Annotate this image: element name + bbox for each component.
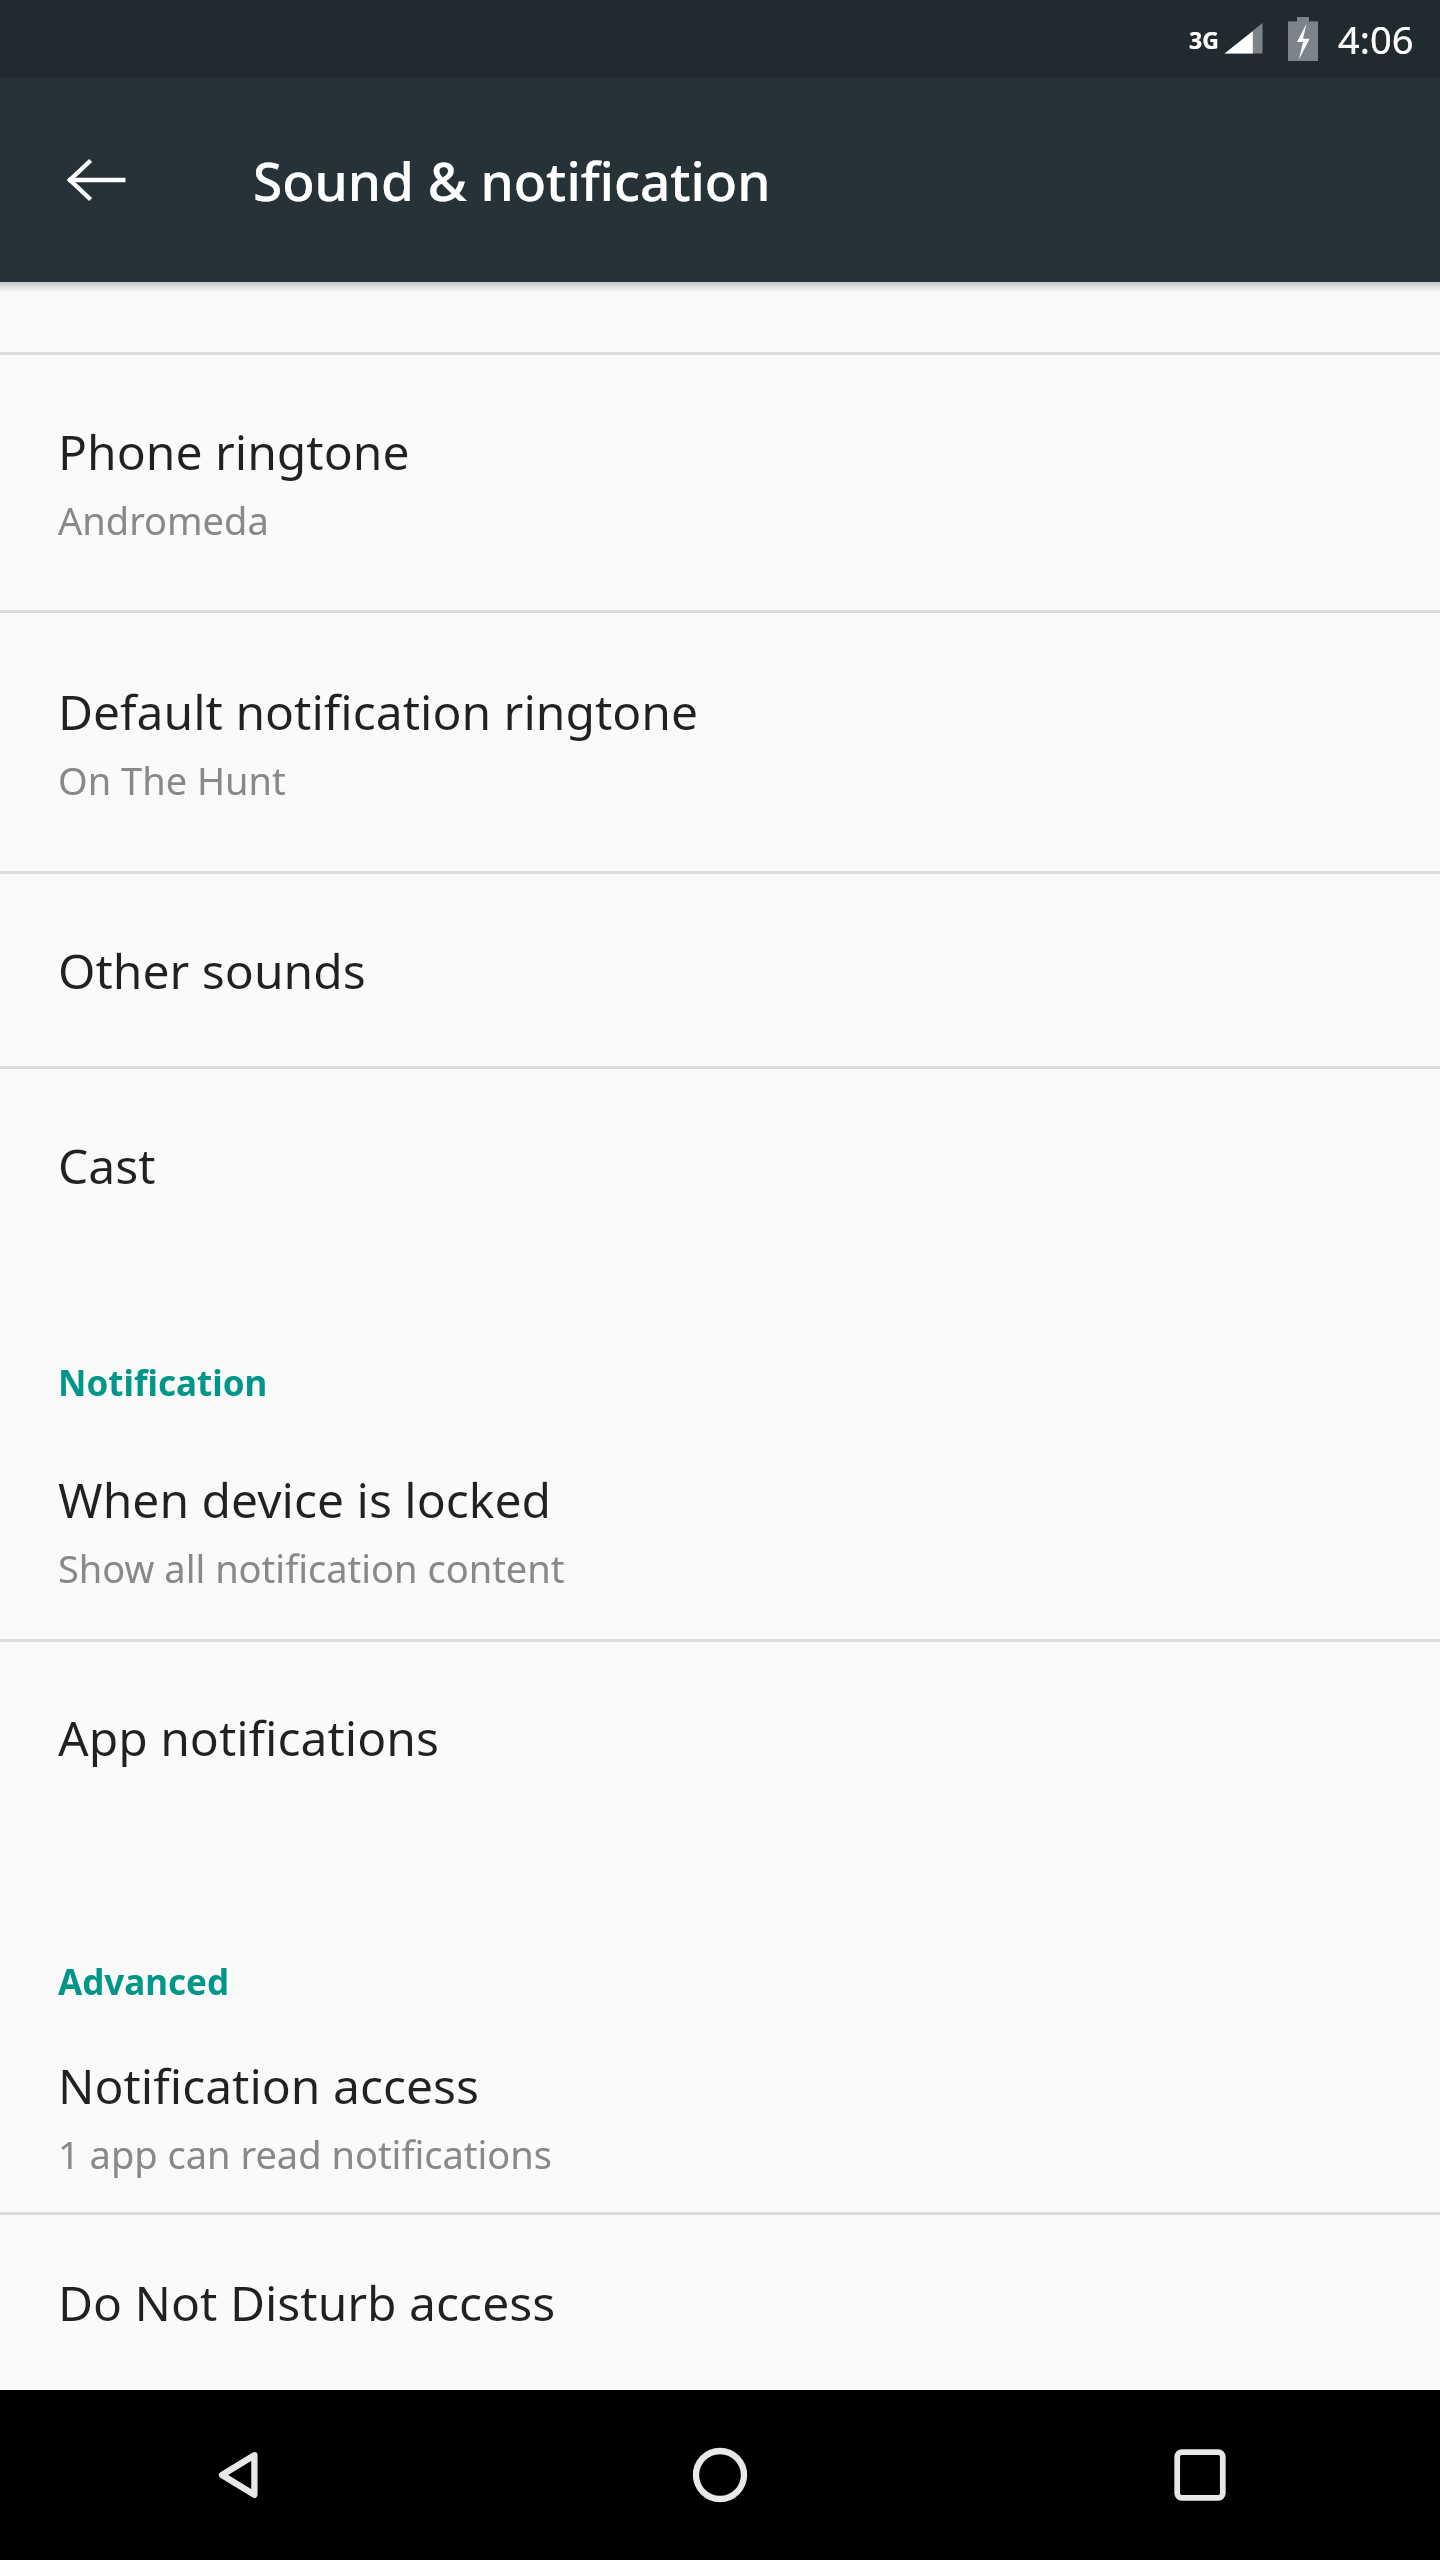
staticText: Phone ringtone [58, 419, 410, 484]
staticText: On The Hunt [58, 754, 286, 806]
staticText: Andromeda [58, 494, 269, 546]
button[interactable]: Do Not Disturb access [0, 2215, 1440, 2390]
staticText: Default notification ringtone [58, 679, 699, 744]
button[interactable]: Phone ringtone [0, 355, 1440, 610]
staticText: 4:06 [1338, 13, 1414, 65]
button[interactable]: Notification access [0, 2020, 1440, 2212]
staticText: Notification [58, 1359, 268, 1407]
staticText: 1 app can read notifications [58, 2128, 553, 2180]
staticText: When device is locked [58, 1467, 552, 1532]
button[interactable]: Cast [0, 1069, 1440, 1261]
staticText: Sound & notification [253, 144, 771, 216]
staticText: App notifications [58, 1705, 439, 1770]
staticText: Notification access [58, 2053, 480, 2118]
button[interactable]: App notifications [0, 1642, 1440, 1832]
button[interactable]: Back [0, 2390, 480, 2560]
staticText: 3G [1189, 24, 1219, 55]
staticText: Advanced [58, 1958, 230, 2006]
button[interactable]: Recent apps [960, 2390, 1440, 2560]
button[interactable]: Default notification ringtone [0, 613, 1440, 871]
button[interactable]: Back [38, 122, 154, 238]
button[interactable]: When device is locked [0, 1421, 1440, 1639]
staticText: Show all notification content [58, 1542, 565, 1594]
staticText: Do Not Disturb access [58, 2270, 556, 2335]
button[interactable]: Other sounds [0, 874, 1440, 1066]
button[interactable]: Home [480, 2390, 960, 2560]
staticText: Cast [58, 1133, 156, 1198]
staticText: Other sounds [58, 938, 366, 1003]
